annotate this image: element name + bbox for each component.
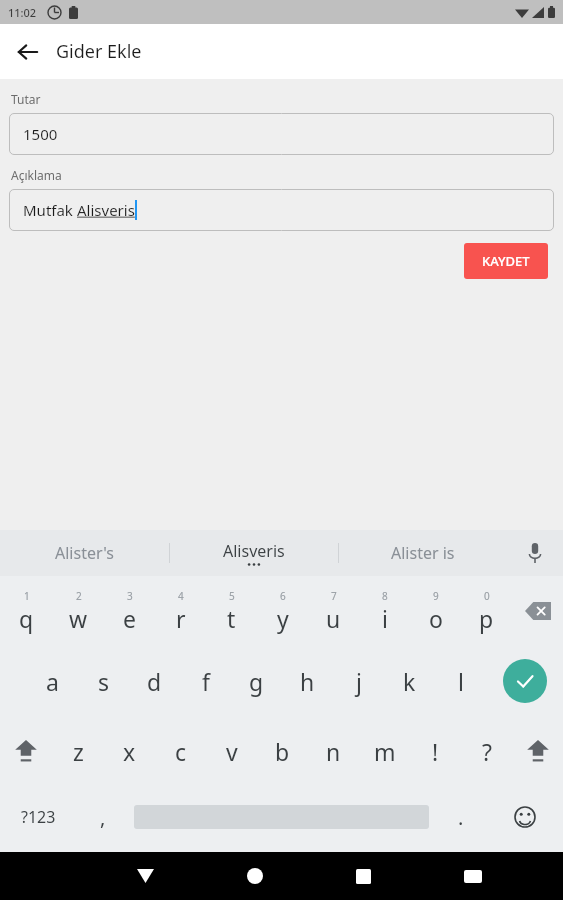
staticText: f [202, 666, 210, 697]
button[interactable]: m [359, 716, 410, 786]
staticText: n [326, 736, 341, 767]
button[interactable]: 8 [359, 576, 410, 646]
button[interactable]: Hide keyboard [91, 852, 200, 900]
staticText: q [19, 603, 34, 634]
staticText: s [98, 666, 110, 697]
staticText: b [275, 736, 290, 767]
staticText: m [374, 736, 396, 767]
staticText: o [429, 603, 443, 634]
staticText: w [69, 603, 88, 634]
button[interactable]: Alister is [339, 530, 507, 576]
staticText: u [326, 603, 341, 634]
button[interactable]: , [77, 786, 128, 848]
staticText: 6 [280, 589, 286, 603]
button[interactable]: 9 [410, 576, 461, 646]
staticText: 0 [484, 589, 490, 603]
staticText: ? [482, 736, 492, 767]
staticText: , [100, 804, 106, 831]
button[interactable]: 0 [461, 576, 512, 646]
button[interactable]: 7 [308, 576, 359, 646]
staticText: 2 [76, 589, 82, 603]
button[interactable]: Recents [309, 852, 418, 900]
button[interactable]: 4 [155, 576, 206, 646]
staticText: i [382, 603, 388, 634]
staticText: j [356, 666, 362, 697]
button[interactable]: v [206, 716, 257, 786]
staticText: k [403, 666, 416, 697]
staticText: z [73, 736, 84, 767]
button[interactable]: l [435, 646, 486, 716]
button[interactable]: ?123 [0, 786, 77, 848]
button[interactable]: ? [461, 716, 512, 786]
staticText: e [123, 603, 136, 634]
staticText: Alister is [391, 542, 455, 564]
staticText: x [123, 736, 136, 767]
button[interactable]: Home [200, 852, 309, 900]
button[interactable]: . [435, 786, 486, 848]
button[interactable]: Emoji [486, 786, 563, 848]
staticText: 3 [127, 589, 133, 603]
button[interactable]: Mutfak [9, 189, 554, 231]
button[interactable]: Shift [512, 716, 563, 786]
button[interactable]: Back [6, 30, 50, 74]
button[interactable]: ! [410, 716, 461, 786]
staticText: 7 [331, 589, 337, 603]
staticText: 1500 [23, 124, 58, 144]
button[interactable]: k [384, 646, 435, 716]
button[interactable]: s [78, 646, 129, 716]
staticText: t [227, 603, 236, 634]
button[interactable]: Voice input [507, 530, 563, 576]
button[interactable]: a [27, 646, 78, 716]
staticText: Gider Ekle [56, 39, 142, 64]
button[interactable]: z [52, 716, 104, 786]
button[interactable]: 2 [52, 576, 104, 646]
staticText: 9 [433, 589, 439, 603]
button[interactable]: c [155, 716, 206, 786]
staticText: Tutar [11, 91, 41, 107]
button[interactable]: f [180, 646, 231, 716]
staticText: l [458, 666, 464, 697]
button[interactable]: 1 [0, 576, 52, 646]
staticText: ?123 [21, 806, 56, 828]
button[interactable]: Shift [0, 716, 52, 786]
button[interactable]: 6 [257, 576, 308, 646]
button[interactable]: 5 [206, 576, 257, 646]
button[interactable]: 3 [104, 576, 155, 646]
staticText: KAYDET [482, 252, 530, 270]
staticText: y [277, 603, 289, 634]
button[interactable]: Backspace [512, 576, 563, 646]
staticText: Alister's [55, 542, 114, 564]
staticText: 4 [178, 589, 184, 603]
button[interactable]: 1500 [9, 113, 554, 155]
staticText: 1 [24, 589, 30, 603]
staticText: Açıklama [11, 167, 62, 183]
button[interactable]: Enter [486, 646, 563, 716]
staticText: 11:02 [8, 5, 37, 20]
button[interactable]: n [308, 716, 359, 786]
staticText: Mutfak [23, 200, 77, 220]
staticText: c [175, 736, 187, 767]
staticText: v [226, 736, 238, 767]
staticText: Alisveris [77, 200, 135, 220]
button[interactable]: Alisveris [170, 530, 338, 576]
staticText: g [249, 666, 264, 697]
staticText: r [176, 603, 186, 634]
button[interactable]: b [257, 716, 308, 786]
button[interactable]: Switch keyboard [418, 852, 527, 900]
button[interactable]: d [129, 646, 180, 716]
button[interactable]: x [104, 716, 155, 786]
button[interactable]: h [282, 646, 333, 716]
staticText: p [479, 603, 494, 634]
button[interactable]: KAYDET [464, 243, 548, 279]
button[interactable]: Alister's [0, 530, 169, 576]
staticText: Alisveris [223, 540, 285, 562]
button[interactable]: j [333, 646, 384, 716]
staticText: 5 [229, 589, 235, 603]
staticText: . [458, 804, 464, 831]
staticText: d [147, 666, 162, 697]
button[interactable]: g [231, 646, 282, 716]
staticText: ! [432, 736, 439, 767]
staticText: h [300, 666, 315, 697]
staticText: a [46, 666, 59, 697]
